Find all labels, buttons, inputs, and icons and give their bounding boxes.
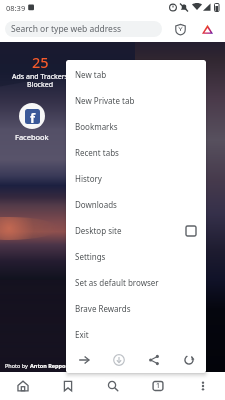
button[interactable]: Exit bbox=[66, 320, 206, 346]
button[interactable]: Bookmarks bbox=[45, 372, 90, 400]
button[interactable]: Switch tabs, 1 open bbox=[135, 372, 180, 400]
button[interactable]: Bookmarks bbox=[66, 112, 206, 138]
staticText: Facebook bbox=[15, 132, 49, 142]
staticText: Exit bbox=[75, 329, 89, 340]
button[interactable]: Search bbox=[90, 372, 135, 400]
button[interactable]: More options bbox=[180, 372, 225, 400]
staticText: Anton Repponen bbox=[30, 362, 76, 369]
button[interactable]: Set as default browser bbox=[66, 268, 206, 294]
staticText: Brave Rewards bbox=[75, 303, 131, 314]
staticText: f bbox=[30, 109, 36, 124]
staticText: Ads and Trackers Blocked bbox=[12, 72, 68, 89]
staticText: Search or type web address bbox=[11, 23, 122, 35]
staticText: Downloads bbox=[75, 199, 117, 210]
button[interactable]: Reload bbox=[171, 346, 206, 373]
staticText: Set as default browser bbox=[75, 277, 159, 288]
button[interactable]: History bbox=[66, 164, 206, 190]
staticText: 25 bbox=[32, 52, 49, 72]
button[interactable]: New Private tab bbox=[66, 86, 206, 112]
staticText: Recent tabs bbox=[75, 147, 119, 158]
staticText: 1 bbox=[156, 381, 161, 391]
staticText: History bbox=[75, 173, 102, 184]
button[interactable]: Downloads bbox=[66, 190, 206, 216]
button[interactable]: Share bbox=[136, 346, 171, 373]
staticText: Photo by bbox=[5, 362, 30, 369]
button[interactable]: Search or type web address bbox=[5, 21, 162, 37]
button[interactable]: Recent tabs bbox=[66, 138, 206, 164]
staticText: 08:39 bbox=[6, 3, 26, 13]
staticText: New Private tab bbox=[75, 95, 135, 106]
button[interactable]: Forward bbox=[66, 346, 101, 373]
staticText: New tab bbox=[75, 69, 107, 80]
button[interactable]: New tab bbox=[66, 60, 206, 86]
button[interactable]: Home bbox=[0, 372, 45, 400]
staticText: Bookmarks bbox=[75, 121, 118, 132]
button[interactable]: Download bbox=[101, 346, 136, 373]
button[interactable]: Settings bbox=[66, 242, 206, 268]
staticText: Settings bbox=[75, 251, 106, 262]
staticText: Desktop site bbox=[75, 225, 122, 236]
button[interactable]: Brave Rewards bbox=[198, 20, 216, 38]
button[interactable]: Brave Shields bbox=[171, 20, 189, 38]
button[interactable]: f bbox=[19, 103, 45, 129]
button[interactable]: Desktop site bbox=[66, 216, 206, 242]
button[interactable]: Brave Rewards bbox=[66, 294, 206, 320]
